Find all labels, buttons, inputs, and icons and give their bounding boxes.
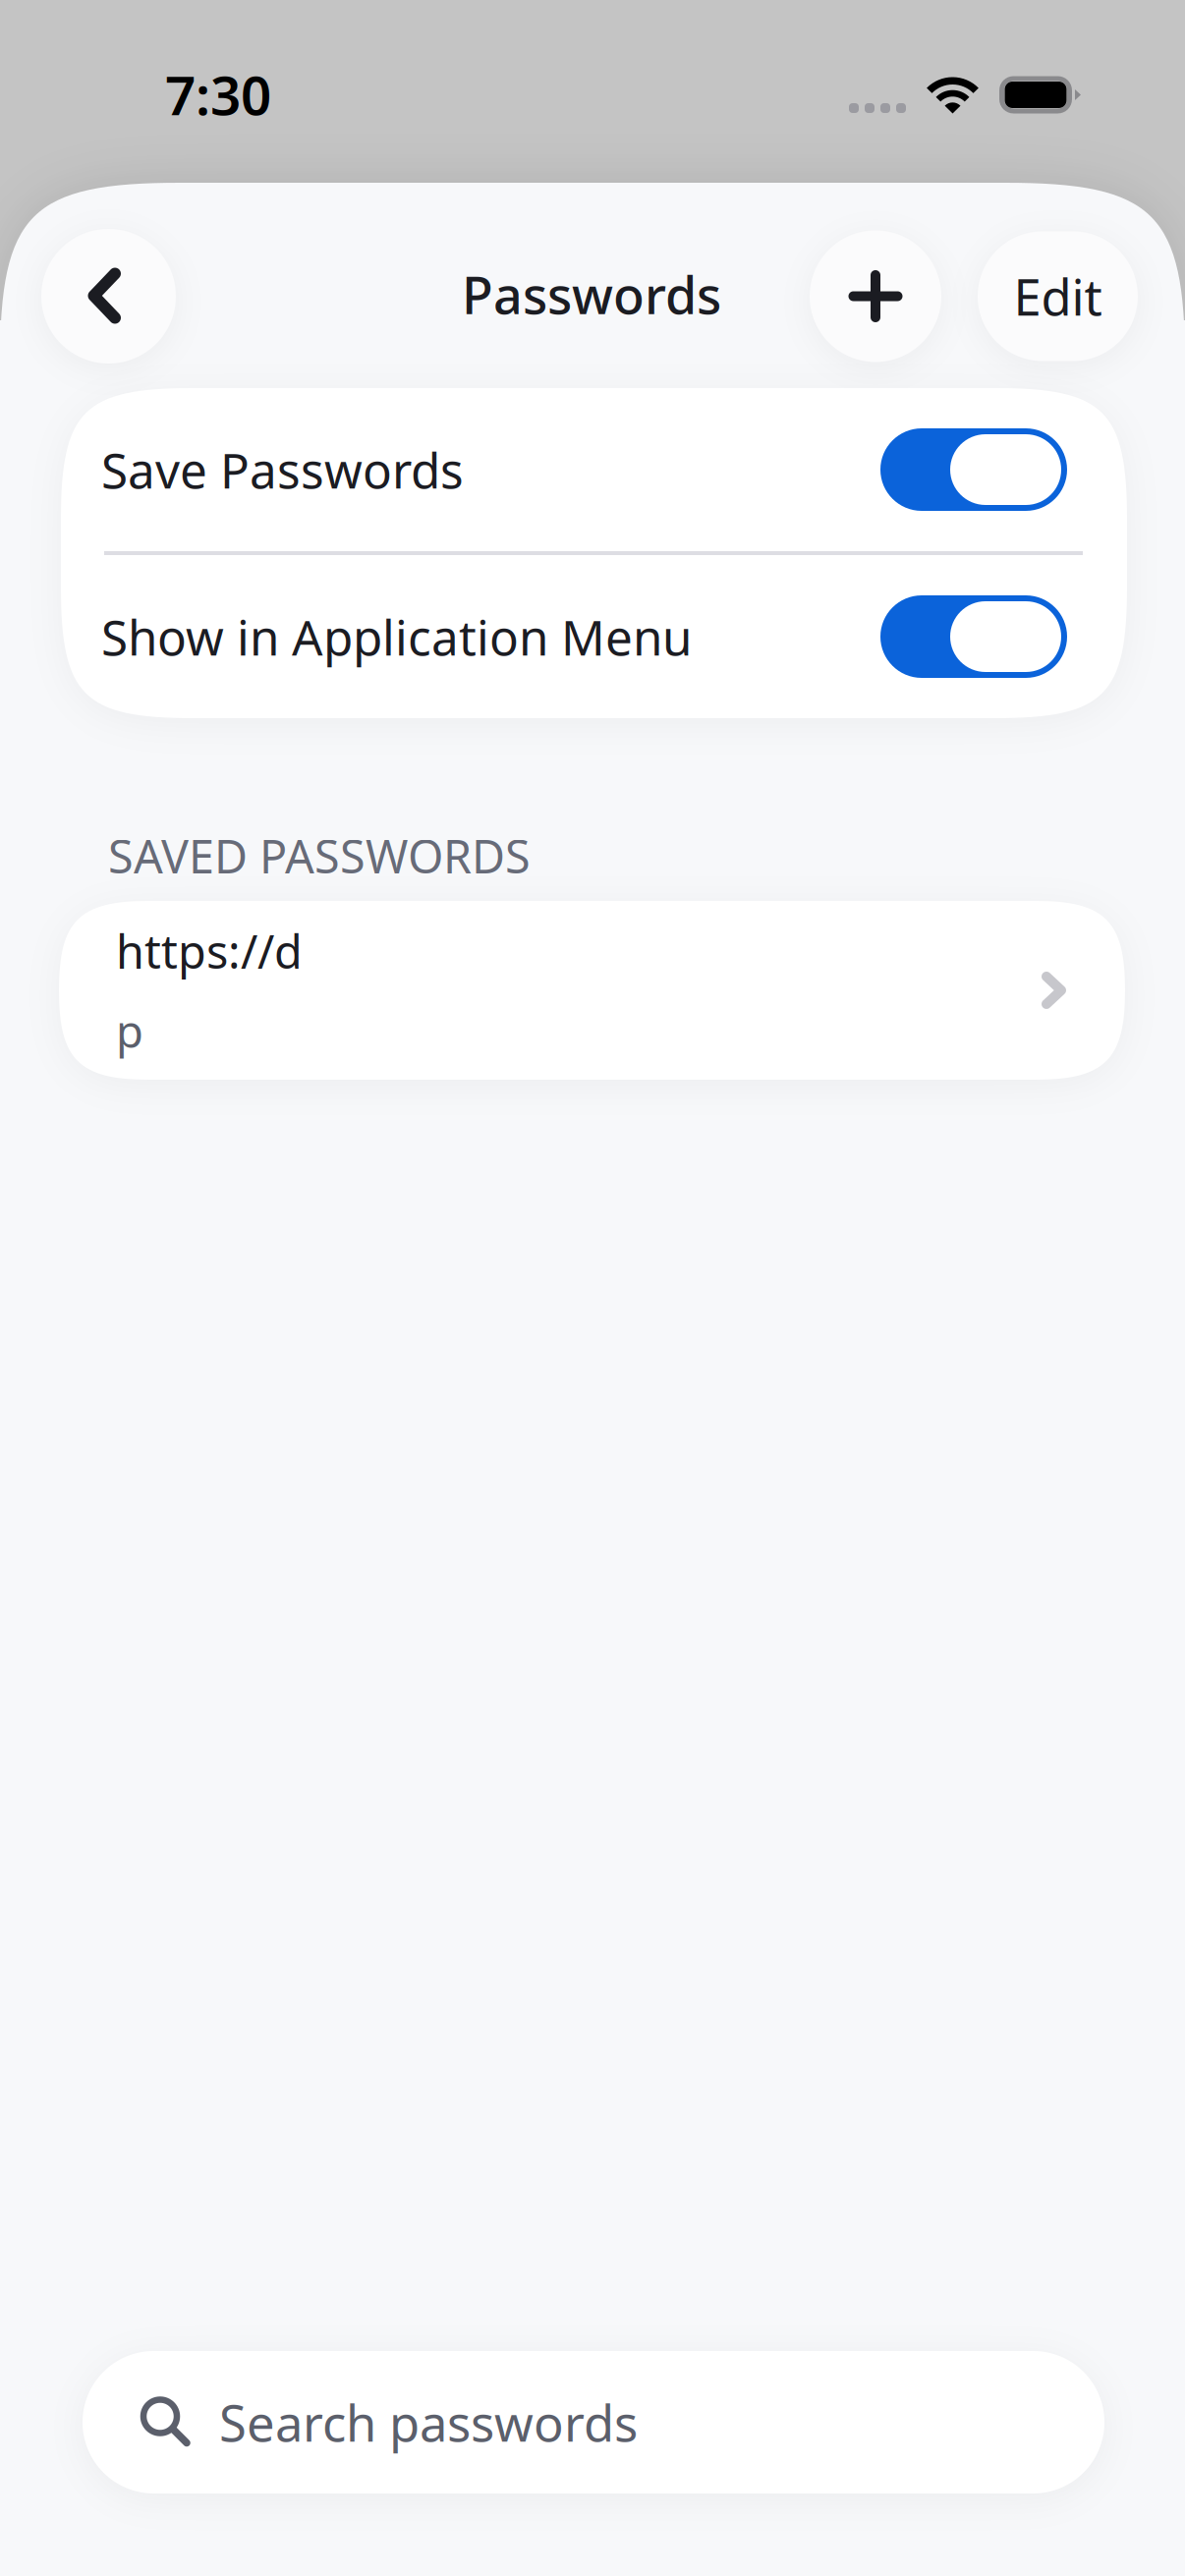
button[interactable]: Back (41, 229, 176, 364)
staticText: p (116, 1001, 143, 1060)
staticText: https://d (116, 920, 303, 981)
staticText: 7:30 (165, 59, 271, 130)
button[interactable]: https://d (59, 901, 1125, 1080)
staticText: Save Passwords (101, 437, 464, 502)
button[interactable]: Show in Application Menu (61, 555, 1127, 718)
staticText: Search passwords (219, 2389, 638, 2455)
staticText: Passwords (462, 260, 721, 328)
staticText: SAVED PASSWORDS (108, 825, 531, 886)
button[interactable]: Save Passwords (61, 388, 1127, 551)
staticText: Show in Application Menu (101, 604, 692, 669)
button[interactable]: Add password (810, 230, 941, 362)
staticText: Edit (1014, 263, 1102, 329)
button[interactable]: Edit (978, 231, 1138, 361)
button[interactable]: Search passwords (83, 2351, 1104, 2493)
